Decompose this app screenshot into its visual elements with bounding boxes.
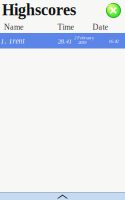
staticText: Highscores bbox=[2, 1, 76, 19]
staticText: Date bbox=[92, 22, 108, 31]
staticText: 1. Trent bbox=[0, 37, 24, 45]
staticText: 2 February bbox=[74, 35, 94, 40]
staticText: Time bbox=[57, 22, 74, 31]
staticText: 16:42 bbox=[108, 38, 118, 44]
staticText: 2019 bbox=[78, 40, 86, 45]
staticText: 28.41 bbox=[57, 37, 71, 45]
button[interactable]: Close bbox=[106, 3, 121, 18]
staticText: Name bbox=[4, 22, 24, 31]
